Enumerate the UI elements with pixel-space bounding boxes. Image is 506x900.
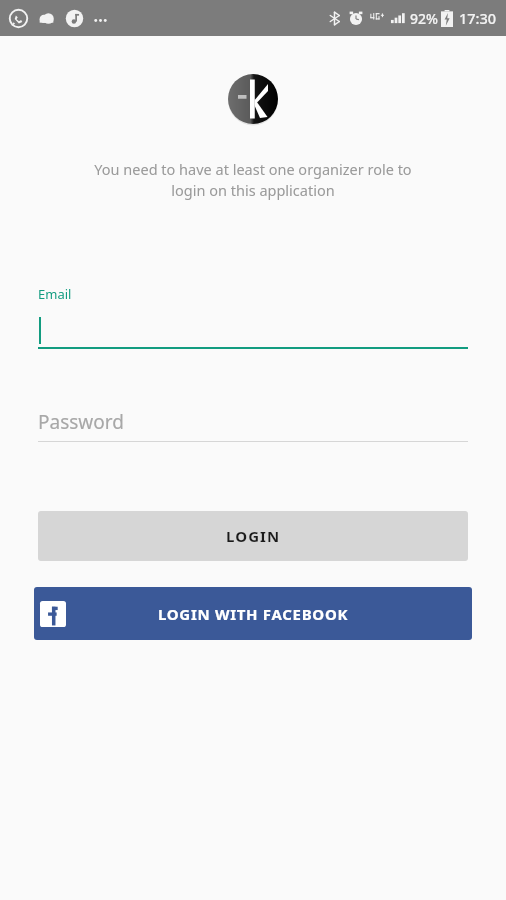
staticText: Email: [38, 285, 72, 303]
button[interactable]: LOGIN: [38, 511, 468, 561]
button[interactable]: Password: [38, 406, 468, 438]
button[interactable]: LOGIN WITH FACEBOOK: [34, 587, 472, 640]
staticText: Password: [38, 409, 124, 435]
staticText: LOGIN WITH FACEBOOK: [158, 604, 349, 624]
staticText: 17:30: [459, 8, 497, 28]
other: Facebook: [40, 601, 66, 627]
staticText: You need to have at least one organizer …: [24, 159, 482, 201]
staticText: LOGIN: [226, 526, 281, 546]
button[interactable]: [38, 313, 468, 347]
staticText: 92%: [410, 9, 438, 28]
